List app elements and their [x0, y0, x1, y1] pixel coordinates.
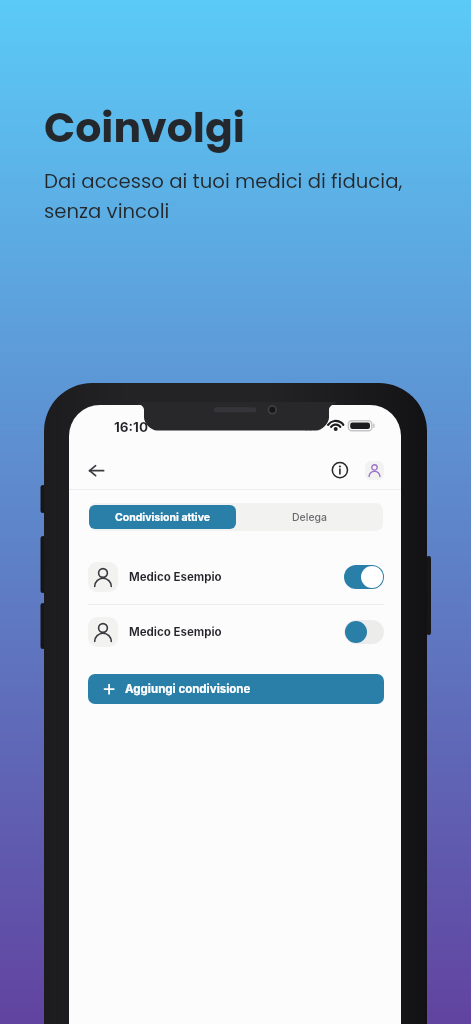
button[interactable]: Toggle sharing [344, 620, 384, 644]
button[interactable]: Delega [236, 503, 383, 531]
button[interactable]: Medico Esempio [88, 553, 384, 601]
button[interactable]: Condivisioni attive [89, 505, 236, 529]
staticText: Medico Esempio [129, 625, 222, 639]
button[interactable]: Toggle sharing [344, 565, 384, 589]
staticText: Aggiungi condivisione [125, 682, 251, 696]
staticText: 16:10 [114, 419, 149, 435]
staticText: Condivisioni attive [115, 511, 211, 524]
button[interactable]: Back [83, 459, 107, 483]
button[interactable]: Info [328, 458, 352, 482]
button[interactable]: Medico Esempio [88, 608, 384, 656]
staticText: Delega [292, 511, 328, 524]
button[interactable]: Aggiungi condivisione [88, 674, 384, 704]
staticText: Medico Esempio [129, 570, 222, 584]
staticText: Coinvolgi [44, 99, 245, 156]
staticText: Dai accesso ai tuoi medici di fiducia, s… [44, 167, 403, 225]
button[interactable]: Profile [365, 461, 384, 480]
